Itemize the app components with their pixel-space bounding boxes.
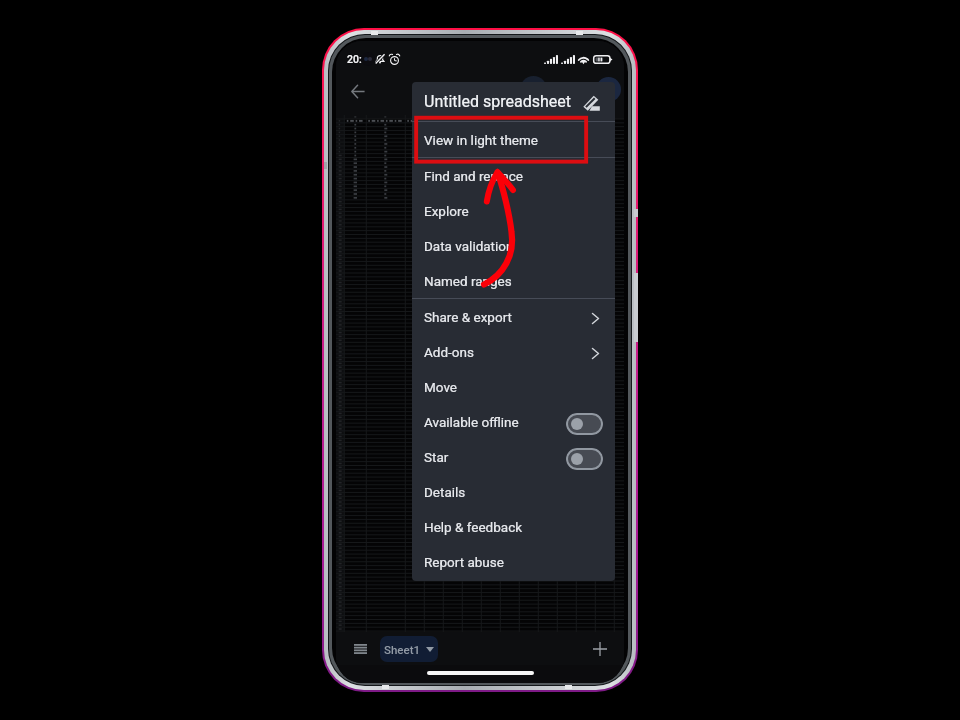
staticText: View in light theme (424, 132, 538, 148)
staticText: Data validation (424, 238, 514, 254)
staticText: Named ranges (424, 273, 512, 289)
staticText: Report abuse (424, 554, 504, 570)
button[interactable]: Star (412, 439, 615, 474)
staticText: 20: (347, 53, 362, 65)
staticText: Available offline (424, 414, 519, 430)
staticText: Help & feedback (424, 519, 523, 535)
button[interactable]: Help & feedback (412, 509, 615, 544)
button[interactable]: Data validation (412, 228, 615, 263)
staticText: Share & export (424, 309, 512, 325)
button[interactable]: Named ranges (412, 263, 615, 298)
button[interactable]: Move (412, 369, 615, 404)
button[interactable]: All sheets (345, 634, 375, 664)
button[interactable]: Details (412, 474, 615, 509)
button[interactable]: Share & export (412, 299, 615, 334)
staticText: Sheet1 (384, 643, 421, 656)
button[interactable]: View in light theme (412, 122, 615, 157)
button[interactable] (566, 413, 603, 435)
staticText: Find and replace (424, 168, 523, 184)
button[interactable] (566, 448, 603, 470)
staticText: Move (424, 379, 457, 395)
button[interactable]: Add-ons (412, 334, 615, 369)
staticText: Add-ons (424, 344, 474, 360)
staticText: Details (424, 484, 466, 500)
button[interactable]: Report abuse (412, 544, 615, 579)
button[interactable]: Explore (412, 193, 615, 228)
button[interactable]: Sheet1 (380, 636, 438, 662)
button[interactable]: Rename (578, 90, 604, 116)
button[interactable]: Find and replace (412, 158, 615, 193)
button[interactable]: Back (341, 74, 375, 108)
staticText: Untitled spreadsheet (424, 92, 571, 111)
staticText: Explore (424, 203, 469, 219)
button[interactable]: Add sheet (585, 634, 615, 664)
button[interactable]: Available offline (412, 404, 615, 439)
staticText: Star (424, 449, 449, 465)
